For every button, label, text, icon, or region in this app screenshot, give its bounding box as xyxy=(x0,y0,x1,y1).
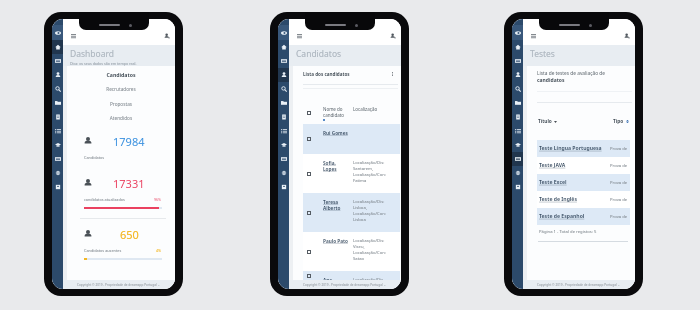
staticText: Copyright © 2019 - Propriedade de dreama… xyxy=(537,283,621,287)
button[interactable]: Teste Excel xyxy=(537,174,630,191)
button[interactable]: Nav item 2 xyxy=(512,54,523,68)
staticText: Teste de Espanhol xyxy=(539,213,585,220)
staticText: Prova de xyxy=(610,197,628,203)
button[interactable]: Nav item 1 xyxy=(278,40,289,54)
button[interactable]: Menu xyxy=(69,31,78,40)
staticText: 17984 xyxy=(113,134,145,149)
button[interactable]: Nav item 4 xyxy=(278,82,289,96)
staticText: 650 xyxy=(120,227,139,242)
button[interactable]: Nav item 0 xyxy=(512,25,523,40)
button[interactable]: Nav item 2 xyxy=(52,54,63,68)
staticText: Tipo xyxy=(613,118,624,125)
button[interactable]: Nav item 6 xyxy=(512,110,523,124)
button[interactable]: Nav item 8 xyxy=(512,138,523,152)
staticText: 4% xyxy=(156,248,162,253)
staticText: Localização/Dis: xyxy=(353,160,385,166)
button[interactable]: Nav item 7 xyxy=(52,124,63,138)
button[interactable]: Nav item 3 xyxy=(512,68,523,82)
button[interactable]: Nav item 6 xyxy=(278,110,289,124)
staticText: Nome do xyxy=(323,106,343,112)
staticText: Fatima xyxy=(353,178,367,184)
button[interactable]: Nav item 10 xyxy=(52,166,63,180)
button[interactable]: Sofia, xyxy=(303,154,400,193)
staticText: Teste JAVA xyxy=(539,162,566,169)
staticText: Viseu, xyxy=(353,244,365,250)
staticText: Teste de Inglês xyxy=(539,196,577,203)
staticText: Prova de xyxy=(610,146,628,152)
button[interactable]: Teste JAVA xyxy=(537,157,630,174)
button[interactable]: Rui Gomes xyxy=(303,124,400,154)
button[interactable]: Ana xyxy=(303,271,400,280)
staticText: Lopes xyxy=(323,166,337,172)
button[interactable]: Nav item 1 xyxy=(512,40,523,54)
button[interactable]: Menu xyxy=(529,31,538,40)
staticText: Candidatos xyxy=(67,71,175,78)
button[interactable]: Nav item 11 xyxy=(278,180,289,194)
staticText: Dashboard xyxy=(70,48,115,60)
staticText: Localização/Dis xyxy=(353,277,384,280)
button[interactable]: Nav item 2 xyxy=(278,54,289,68)
button[interactable]: Nav item 1 xyxy=(52,40,63,54)
staticText: candidatos atualizados xyxy=(84,197,125,202)
staticText: Teste Excel xyxy=(539,179,567,186)
staticText: Lista dos candidatos xyxy=(303,71,350,77)
staticText: Localização/Con: xyxy=(353,250,386,256)
staticText: Satao xyxy=(353,256,365,262)
staticText: Santarem, xyxy=(353,166,374,172)
button[interactable]: Nav item 7 xyxy=(512,124,523,138)
button[interactable]: Nav item 8 xyxy=(52,138,63,152)
button[interactable]: Nav item 7 xyxy=(278,124,289,138)
staticText: Testes xyxy=(530,48,555,60)
button[interactable]: Nav item 9 xyxy=(52,152,63,166)
button[interactable]: Nav item 4 xyxy=(512,82,523,96)
staticText: Ana xyxy=(323,277,333,280)
staticText: Localização xyxy=(353,106,378,112)
button[interactable]: Nav item 9 xyxy=(278,152,289,166)
button[interactable]: Teresa xyxy=(303,193,400,232)
button[interactable]: More options xyxy=(389,71,395,77)
staticText: Lista de testes de avaliação de xyxy=(537,70,606,77)
staticText: Alberto xyxy=(323,205,341,211)
staticText: Candidatos ausentes xyxy=(84,248,122,253)
staticText: Propostas xyxy=(67,101,175,107)
staticText: Lisboa xyxy=(353,217,366,223)
button[interactable]: Nav item 10 xyxy=(512,166,523,180)
staticText: Lisboa, xyxy=(353,205,367,211)
button[interactable]: Nav item 9 xyxy=(512,152,523,166)
staticText: Título xyxy=(538,118,552,125)
staticText: Teresa xyxy=(323,199,339,205)
button[interactable]: Account xyxy=(162,31,171,40)
staticText: 96% xyxy=(154,197,162,202)
button[interactable]: Account xyxy=(622,31,631,40)
staticText: Teste Língua Portuguesa xyxy=(539,145,602,152)
button[interactable]: Nav item 0 xyxy=(52,25,63,40)
button[interactable]: Teste de Inglês xyxy=(537,191,630,208)
button[interactable]: Nav item 11 xyxy=(512,180,523,194)
button[interactable]: Menu xyxy=(295,31,304,40)
button[interactable]: Nav item 11 xyxy=(52,180,63,194)
staticText: Recrutadores xyxy=(67,86,175,92)
button[interactable]: Teste de Espanhol xyxy=(537,208,630,225)
button[interactable]: Account xyxy=(388,31,397,40)
staticText: Dica: os seus dados são em tempo real. xyxy=(70,61,137,66)
button[interactable]: Nav item 5 xyxy=(52,96,63,110)
staticText: Prova de xyxy=(610,180,628,186)
button[interactable]: Teste Língua Portuguesa xyxy=(537,140,630,157)
button[interactable]: Nav item 10 xyxy=(278,166,289,180)
button[interactable]: Paulo Pato xyxy=(303,232,400,271)
staticText: Copyright © 2019 - Propriedade de dreama… xyxy=(303,283,387,287)
button[interactable]: Nav item 3 xyxy=(278,68,289,82)
staticText: Localização/Con: xyxy=(353,211,386,217)
button[interactable]: Nav item 0 xyxy=(278,25,289,40)
button[interactable]: Nav item 5 xyxy=(278,96,289,110)
staticText: Candidatos xyxy=(296,48,342,60)
staticText: Copyright © 2019 - Propriedade de dreama… xyxy=(77,283,161,287)
button[interactable]: Nav item 6 xyxy=(52,110,63,124)
button[interactable]: Nav item 4 xyxy=(52,82,63,96)
button[interactable]: Nav item 3 xyxy=(52,68,63,82)
staticText: Atendidos xyxy=(67,115,175,121)
staticText: Prova de xyxy=(610,214,628,220)
button[interactable]: Nav item 5 xyxy=(512,96,523,110)
staticText: Prova de xyxy=(610,163,628,169)
button[interactable]: Nav item 8 xyxy=(278,138,289,152)
